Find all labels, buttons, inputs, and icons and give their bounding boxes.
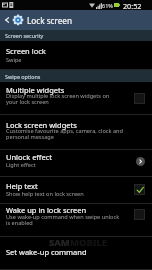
staticText: your lock screen xyxy=(6,98,49,106)
staticText: Unlock effect xyxy=(6,152,53,162)
staticText: Screen lock xyxy=(6,46,46,56)
staticText: Swipe options xyxy=(5,73,41,80)
staticText: Multiple widgets xyxy=(6,85,65,95)
staticText: Light effect xyxy=(6,161,36,169)
button[interactable]: Open unlock effect xyxy=(136,157,145,166)
button[interactable] xyxy=(0,150,152,177)
button[interactable] xyxy=(0,82,152,115)
staticText: Swipe xyxy=(6,56,22,64)
staticText: 20:52 xyxy=(123,1,142,11)
staticText: Use wake-up command when swipe unlock xyxy=(6,213,120,221)
staticText: 61% xyxy=(102,2,113,9)
button[interactable] xyxy=(0,115,152,150)
staticText: Customise favourite apps, camera, clock … xyxy=(6,127,123,135)
staticText: MOBILE xyxy=(70,236,108,249)
staticText: Display multiple lock screen widgets on xyxy=(6,92,110,100)
staticText: Screen security xyxy=(5,32,44,39)
button[interactable]: Back xyxy=(0,10,13,30)
staticText: Set wake-up command xyxy=(6,247,87,257)
button[interactable] xyxy=(0,204,152,237)
staticText: Help text xyxy=(6,181,38,191)
button[interactable] xyxy=(0,41,152,70)
staticText: Lock screen xyxy=(27,15,73,26)
button[interactable] xyxy=(0,237,152,270)
button[interactable]: Help text checkbox xyxy=(134,184,145,195)
staticText: SAM xyxy=(49,236,70,249)
staticText: is enabled xyxy=(6,219,33,227)
button[interactable]: Multiple widgets checkbox xyxy=(134,93,145,104)
staticText: Wake up in lock screen xyxy=(6,205,87,215)
staticText: Show help text on lock screen xyxy=(6,190,84,198)
staticText: personal message xyxy=(6,133,54,141)
button[interactable] xyxy=(0,177,152,204)
button[interactable]: Wake up in lock screen checkbox xyxy=(134,209,145,220)
staticText: Lock screen widgets xyxy=(6,120,77,130)
